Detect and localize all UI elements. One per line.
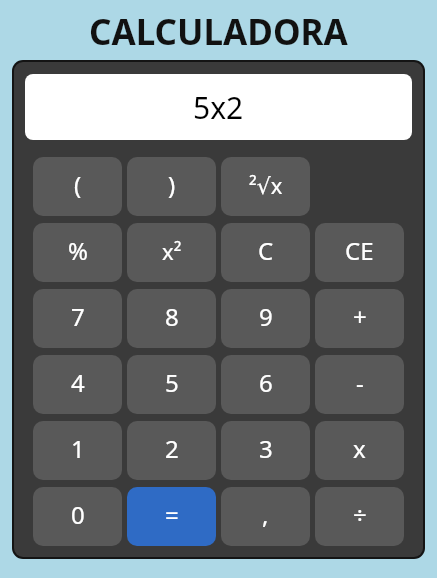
button[interactable]: 5x2 — [25, 74, 412, 140]
button[interactable]: ) — [127, 157, 216, 216]
staticText: 5x2 — [193, 87, 244, 128]
button[interactable]: ( — [33, 157, 122, 216]
staticText: , — [262, 498, 269, 531]
button[interactable]: % — [33, 223, 122, 282]
staticText: CE — [345, 234, 374, 267]
button[interactable]: ²√x — [221, 157, 310, 216]
staticText: 0 — [71, 498, 85, 531]
staticText: ÷ — [353, 498, 367, 531]
staticText: - — [356, 366, 364, 399]
button[interactable]: - — [315, 355, 404, 414]
button[interactable]: C — [221, 223, 310, 282]
staticText: 9 — [259, 300, 273, 333]
staticText: 6 — [259, 366, 273, 399]
staticText: x² — [162, 236, 182, 266]
button[interactable]: 7 — [33, 289, 122, 348]
button[interactable]: 0 — [33, 487, 122, 546]
staticText: = — [165, 498, 179, 531]
staticText: + — [353, 300, 367, 333]
button[interactable]: x — [315, 421, 404, 480]
staticText: ( — [74, 168, 82, 201]
staticText: 5 — [165, 366, 179, 399]
staticText: ) — [168, 168, 176, 201]
button[interactable]: x² — [127, 223, 216, 282]
staticText: C — [258, 234, 274, 267]
button[interactable]: 3 — [221, 421, 310, 480]
button[interactable]: 4 — [33, 355, 122, 414]
button[interactable]: 6 — [221, 355, 310, 414]
button[interactable]: , — [221, 487, 310, 546]
button[interactable]: 8 — [127, 289, 216, 348]
button[interactable]: = — [127, 487, 216, 546]
staticText: CALCULADORA — [89, 8, 348, 56]
button[interactable]: 1 — [33, 421, 122, 480]
staticText: 3 — [259, 432, 273, 465]
staticText: 4 — [71, 366, 85, 399]
button[interactable]: ÷ — [315, 487, 404, 546]
staticText: % — [68, 234, 88, 267]
button[interactable]: 5 — [127, 355, 216, 414]
staticText: ²√x — [249, 170, 283, 200]
button[interactable]: 9 — [221, 289, 310, 348]
staticText: 7 — [71, 300, 85, 333]
button[interactable]: CE — [315, 223, 404, 282]
staticText: 1 — [71, 432, 85, 465]
staticText: x — [353, 432, 366, 465]
button[interactable]: 2 — [127, 421, 216, 480]
staticText: 8 — [165, 300, 179, 333]
button[interactable]: + — [315, 289, 404, 348]
staticText: 2 — [165, 432, 179, 465]
